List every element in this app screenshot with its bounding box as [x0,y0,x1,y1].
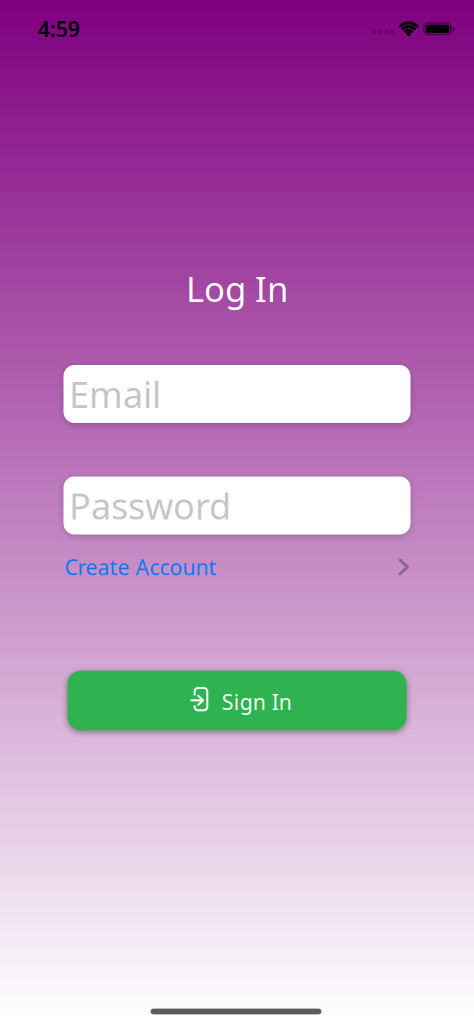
button[interactable]: Sign In [67,671,406,730]
button[interactable]: Create Account [64,552,409,582]
staticText: Email [69,370,161,418]
staticText: Sign In [222,688,292,716]
staticText: Create Account [64,553,216,581]
staticText: Password [69,482,231,529]
staticText: Log In [186,265,288,311]
staticText: 4:59 [38,15,80,43]
